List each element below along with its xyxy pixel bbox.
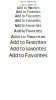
- staticText: Add to Favorites: [10, 45, 46, 52]
- staticText: Add to Favorites: [19, 3, 36, 6]
- staticText: Add to Favorites: [15, 18, 41, 23]
- staticText: Add to Favorites: [15, 14, 41, 18]
- staticText: Add to Favorites: [14, 23, 41, 28]
- staticText: Add to Favorites: [16, 10, 40, 14]
- staticText: Add to Favorites: [20, 0, 36, 3]
- staticText: Add to Favorites: [11, 33, 45, 39]
- staticText: Add to Favorites: [14, 28, 42, 33]
- staticText: Add to Favorites: [10, 39, 46, 45]
- staticText: Add to Favorites: [9, 52, 47, 59]
- staticText: Add to Favorites: [17, 6, 39, 10]
